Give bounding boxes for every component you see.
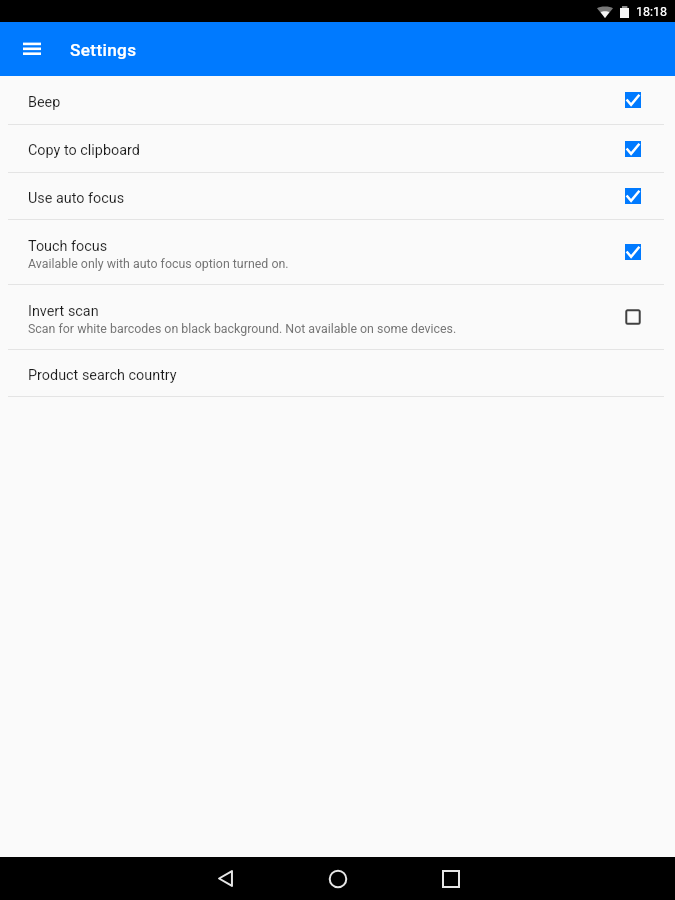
staticText: Invert scan (28, 303, 99, 320)
button[interactable]: Checked (617, 84, 649, 116)
button[interactable]: Product search country (0, 350, 675, 397)
button[interactable]: Copy to clipboard (0, 125, 675, 173)
button[interactable]: Touch focus (0, 220, 675, 285)
staticText: Use auto focus (28, 190, 125, 207)
button[interactable]: Invert scan (0, 285, 675, 350)
button[interactable]: Beep (0, 76, 675, 125)
button[interactable]: Use auto focus (0, 173, 675, 220)
button[interactable]: Checked (617, 133, 649, 165)
staticText: Copy to clipboard (28, 142, 140, 159)
button[interactable]: Home (310, 857, 366, 900)
button[interactable]: Checked (617, 180, 649, 212)
button[interactable]: Checked (617, 236, 649, 268)
staticText: Available only with auto focus option tu… (28, 256, 289, 271)
button[interactable]: Back (197, 857, 253, 900)
button[interactable]: Unchecked (617, 301, 649, 333)
staticText: Product search country (28, 367, 177, 384)
staticText: 18:18 (636, 4, 668, 19)
staticText: Scan for white barcodes on black backgro… (28, 321, 457, 336)
button[interactable]: Recent apps (423, 857, 479, 900)
button[interactable]: Open navigation menu (8, 25, 56, 73)
staticText: Settings (70, 40, 137, 60)
staticText: Touch focus (28, 238, 108, 255)
staticText: Beep (28, 94, 61, 111)
